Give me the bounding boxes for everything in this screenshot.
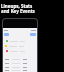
button[interactable]: Home team (4, 33, 9, 36)
button[interactable] (5, 44, 35, 48)
button[interactable] (6, 49, 35, 53)
button[interactable] (5, 61, 35, 65)
button[interactable]: Away team (30, 33, 36, 36)
button[interactable] (5, 69, 35, 72)
button[interactable] (6, 39, 35, 43)
button[interactable] (5, 65, 35, 69)
button[interactable]: Match header (4, 28, 36, 32)
button[interactable] (5, 57, 35, 61)
staticText: Lineups, Stats and Key Events (1, 3, 64, 15)
